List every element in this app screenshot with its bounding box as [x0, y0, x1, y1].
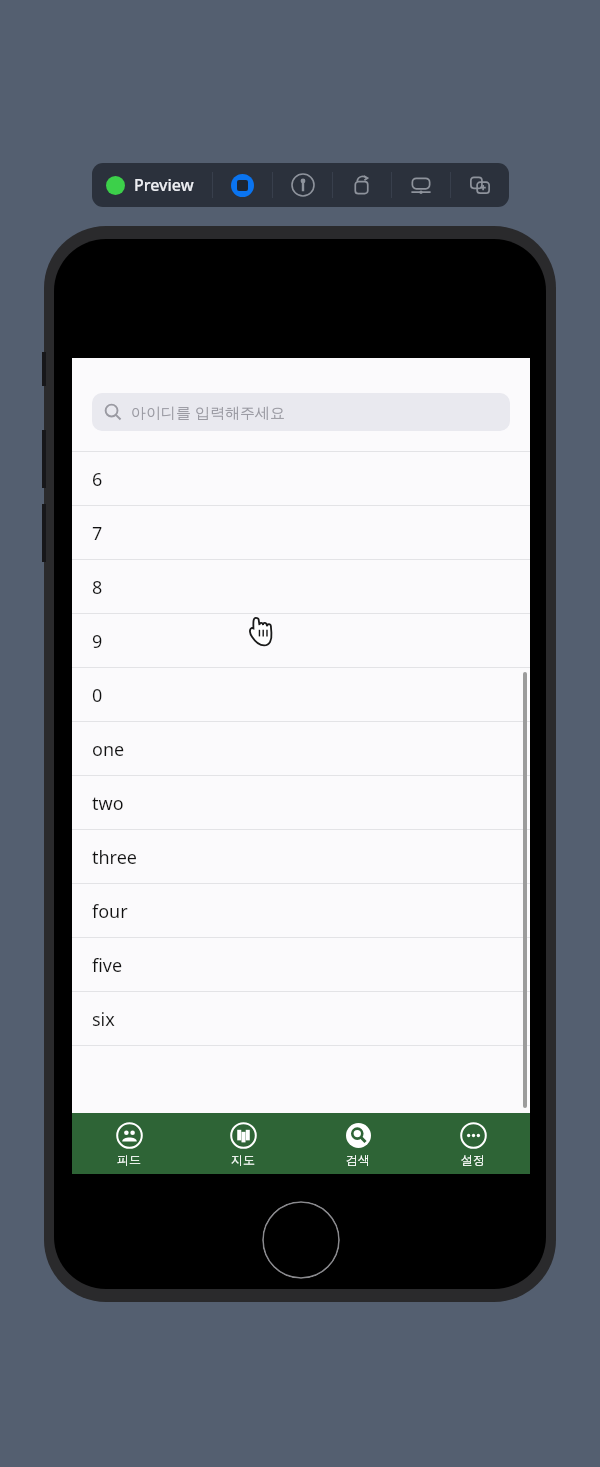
button[interactable]: three	[72, 830, 530, 884]
staticText: 6	[92, 467, 103, 492]
staticText: six	[92, 1007, 115, 1032]
button[interactable]: Device	[392, 163, 450, 207]
button[interactable]: 지도	[186, 1113, 300, 1174]
button[interactable]: 7	[72, 506, 530, 560]
button[interactable]: Add variant	[451, 163, 509, 207]
staticText: 검색	[346, 1152, 370, 1167]
button[interactable]: Home	[262, 1201, 340, 1279]
staticText: 0	[92, 683, 103, 708]
staticText: 7	[92, 521, 103, 546]
button[interactable]: 8	[72, 560, 530, 614]
button[interactable]: 설정	[415, 1113, 530, 1174]
staticText: 8	[92, 575, 103, 600]
staticText: 설정	[461, 1152, 485, 1167]
staticText: three	[92, 845, 137, 870]
button[interactable]: 9	[72, 614, 530, 668]
button[interactable]: Preview	[92, 163, 212, 207]
other: Reload	[350, 173, 374, 197]
other: Inspect	[291, 173, 315, 197]
button[interactable]	[213, 163, 272, 207]
button[interactable]: Reload	[333, 163, 391, 207]
button[interactable]: one	[72, 722, 530, 776]
button[interactable]: 아이디를 입력해주세요	[92, 393, 510, 431]
other: Device	[409, 173, 433, 197]
staticText: two	[92, 791, 124, 816]
staticText: five	[92, 953, 123, 978]
other: Add variant	[468, 173, 492, 197]
button[interactable]: 검색	[300, 1113, 415, 1174]
button[interactable]: 0	[72, 668, 530, 722]
staticText: four	[92, 899, 128, 924]
button[interactable]: 피드	[72, 1113, 186, 1174]
staticText: 지도	[231, 1152, 255, 1167]
button[interactable]: five	[72, 938, 530, 992]
button[interactable]: four	[72, 884, 530, 938]
button[interactable]: 6	[72, 452, 530, 506]
staticText: Preview	[134, 174, 194, 196]
button[interactable]: two	[72, 776, 530, 830]
staticText: 9	[92, 629, 103, 654]
staticText: 아이디를 입력해주세요	[131, 402, 285, 422]
staticText: 피드	[117, 1152, 141, 1167]
staticText: one	[92, 737, 125, 762]
button[interactable]: six	[72, 992, 530, 1046]
button[interactable]: Inspect	[273, 163, 332, 207]
